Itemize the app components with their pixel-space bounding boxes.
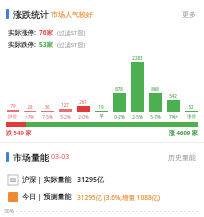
staticText: 5-7%: [150, 114, 161, 120]
staticText: 市场人气较好: [51, 10, 93, 19]
staticText: (过滤ST股): [57, 41, 86, 49]
staticText: 跌 549 家: [6, 129, 32, 137]
staticText: 涨停: [187, 114, 196, 120]
staticText: 实际涨停:: [8, 28, 36, 37]
staticText: 2283: [132, 55, 143, 61]
staticText: 76家: [39, 28, 53, 37]
staticText: 28: [27, 104, 33, 110]
staticText: 03-03: [51, 152, 70, 162]
staticText: 127: [61, 102, 69, 108]
button[interactable]: 今日 | 预测量能: [0, 190, 204, 204]
staticText: 868: [151, 86, 159, 92]
staticText: 7%+: [169, 114, 178, 120]
staticText: >7%: [25, 114, 34, 120]
staticText: 更多: [182, 10, 196, 19]
staticText: 沪深 | 实际量能: [22, 175, 72, 185]
button[interactable]: 更多: [180, 8, 198, 21]
staticText: 31295亿: [77, 175, 105, 185]
staticText: 53家: [39, 40, 53, 49]
staticText: 历史量能: [168, 153, 196, 162]
staticText: 30%: [4, 208, 14, 215]
staticText: 市场量能: [13, 152, 49, 163]
staticText: 878: [115, 86, 123, 92]
staticText: 2-0%: [78, 114, 89, 120]
staticText: 261: [79, 99, 87, 105]
staticText: 31295亿 (3.6%,增量 1088亿): [77, 193, 161, 202]
staticText: 实际跌停:: [8, 40, 36, 49]
button[interactable]: 沪深 | 实际量能: [0, 173, 204, 187]
staticText: 0-2%: [114, 114, 125, 120]
staticText: 跌停: [8, 114, 17, 120]
staticText: 79: [10, 103, 16, 109]
staticText: 36: [44, 104, 50, 110]
staticText: 52: [188, 104, 194, 110]
staticText: 542: [169, 93, 177, 99]
staticText: 今日 | 预测量能: [22, 192, 72, 202]
staticText: 涨跌统计: [13, 9, 49, 20]
staticText: 2-5%: [132, 114, 143, 120]
staticText: 平: [99, 114, 104, 120]
staticText: (过滤ST股): [57, 29, 86, 37]
staticText: 5-2%: [60, 114, 71, 120]
staticText: 7-5%: [42, 114, 53, 120]
button[interactable]: 历史量能: [166, 151, 198, 164]
staticText: 涨 4609 家: [169, 129, 198, 137]
staticText: 19: [98, 104, 104, 110]
